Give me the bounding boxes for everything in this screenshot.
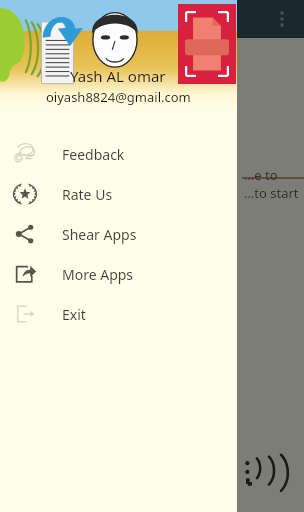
button[interactable]: Speak: [240, 448, 286, 494]
button[interactable]: App icon TXT: [178, 4, 236, 84]
button[interactable]: More Apps: [0, 254, 237, 294]
staticText: …e to …to start: [244, 166, 299, 202]
button[interactable]: More options: [266, 3, 298, 35]
staticText: Yash AL omar: [70, 66, 166, 86]
button[interactable]: Shear Apps: [0, 214, 237, 254]
staticText: oiyash8824@gmail.com: [46, 88, 191, 106]
button[interactable]: Feedback: [0, 134, 237, 174]
button[interactable]: Rate Us: [0, 174, 237, 214]
staticText: Shear Apps: [62, 225, 137, 244]
staticText: More Apps: [62, 265, 134, 284]
staticText: Exit: [62, 305, 86, 324]
staticText: Feedback: [62, 145, 125, 164]
button[interactable]: Exit: [0, 294, 237, 334]
staticText: Rate Us: [62, 185, 113, 204]
